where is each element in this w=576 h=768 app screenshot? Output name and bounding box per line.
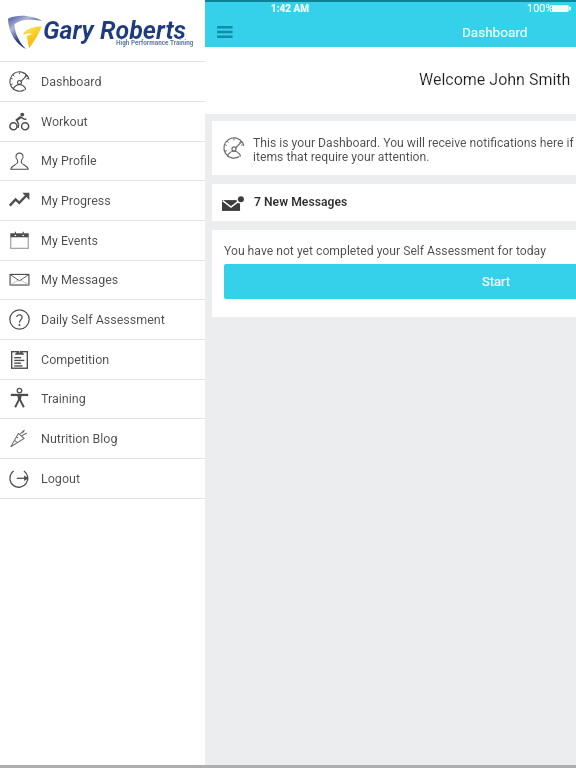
staticText: items that require your attention. — [253, 150, 430, 164]
staticText: High Performance Training — [116, 39, 194, 47]
staticText: Workout — [41, 114, 88, 129]
button[interactable]: Nutrition Blog — [0, 419, 205, 459]
button[interactable]: Competition — [0, 340, 205, 380]
staticText: Training — [41, 391, 86, 406]
staticText: Start — [482, 274, 511, 289]
staticText: You have not yet completed your Self Ass… — [224, 244, 546, 258]
staticText: Dashboard — [41, 74, 102, 89]
staticText: 7 New Messages — [254, 195, 348, 209]
button[interactable]: My Progress — [0, 181, 205, 221]
staticText: Daily Self Assessment — [41, 312, 165, 327]
staticText: This is your Dashboard. You will receive… — [253, 136, 576, 150]
button[interactable]: Start — [224, 264, 576, 299]
button[interactable]: Open navigation menu — [211, 19, 239, 45]
staticText: Welcome John Smith — [419, 70, 571, 89]
staticText: My Events — [41, 233, 98, 248]
staticText: Dashboard — [462, 24, 528, 40]
button[interactable]: Daily Self Assessment — [0, 300, 205, 340]
button[interactable]: My Messages — [0, 260, 205, 300]
button[interactable]: Training — [0, 379, 205, 419]
staticText: Competition — [41, 352, 110, 367]
button[interactable]: Dashboard — [0, 62, 205, 102]
staticText: My Progress — [41, 193, 111, 208]
staticText: My Messages — [41, 272, 119, 287]
button[interactable]: Workout — [0, 102, 205, 142]
staticText: Nutrition Blog — [41, 431, 118, 446]
staticText: 1:42 AM — [271, 3, 309, 15]
staticText: My Profile — [41, 153, 97, 168]
button[interactable]: Logout — [0, 459, 205, 499]
staticText: Gary Roberts — [43, 16, 187, 45]
button[interactable]: My Profile — [0, 141, 205, 181]
staticText: 100% — [527, 2, 554, 15]
button[interactable]: My Events — [0, 221, 205, 261]
staticText: Logout — [41, 471, 80, 486]
